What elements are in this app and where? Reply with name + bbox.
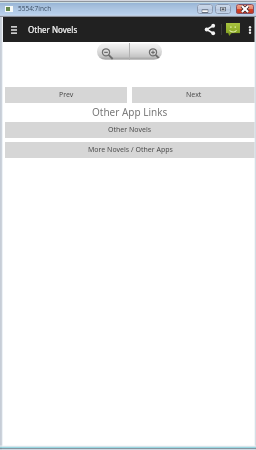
button[interactable]: Maximize [215, 4, 231, 14]
button[interactable]: Prev [5, 87, 127, 103]
button[interactable]: Next [132, 87, 255, 103]
staticText: Next [186, 90, 202, 100]
staticText: Other Novels [108, 125, 152, 135]
button[interactable]: Zoom out [97, 43, 129, 60]
button[interactable]: Close [236, 4, 254, 14]
button[interactable]: More options [244, 17, 255, 42]
button[interactable]: Send message [222, 17, 244, 42]
staticText: Other App Links [92, 105, 168, 119]
staticText: More Novels / Other Apps [88, 145, 173, 155]
button[interactable]: More Novels / Other Apps [5, 142, 255, 158]
staticText: Prev [59, 90, 74, 100]
button[interactable]: Minimize [197, 4, 213, 14]
button[interactable]: Share [199, 17, 221, 42]
button[interactable]: Zoom in [130, 43, 162, 60]
button[interactable]: Other Novels [5, 122, 255, 138]
staticText: Other Novels [28, 24, 78, 35]
button[interactable]: Open navigation drawer [3, 17, 24, 42]
staticText: 5554:7inch [18, 4, 52, 13]
